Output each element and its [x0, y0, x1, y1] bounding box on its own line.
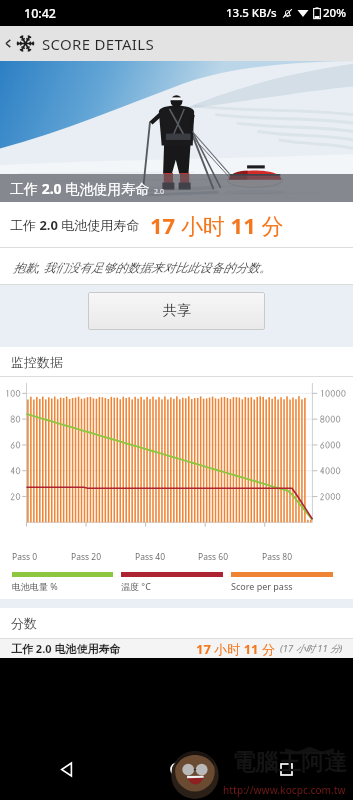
staticText: Pass 80 — [262, 551, 292, 563]
staticText: 分数 — [11, 615, 37, 631]
button[interactable]: 工作 2.0 电池使用寿命 — [0, 639, 353, 658]
staticText: 電腦王阿達 — [232, 748, 347, 777]
staticText: 监控数据 — [11, 354, 63, 370]
staticText: 工作 2.0 电池使用寿命 — [11, 641, 121, 656]
staticText: 13.5 KB/s — [226, 5, 277, 21]
staticText: SCORE DETAILS — [42, 34, 154, 54]
staticText: 温度 °C — [121, 580, 151, 592]
button[interactable]: Back — [52, 754, 82, 784]
staticText: Pass 40 — [135, 551, 165, 563]
button[interactable]: Recents — [271, 754, 301, 784]
staticText: 2.0 — [154, 187, 164, 197]
staticText: Score per pass — [231, 580, 293, 592]
staticText: 工作 2.0 电池使用寿命 — [10, 179, 150, 198]
staticText: 20% — [323, 5, 346, 21]
button[interactable]: Back — [0, 26, 16, 61]
staticText: (17 小时 11 分) — [280, 642, 343, 655]
staticText: 工作 2.0 电池使用寿命 — [10, 216, 140, 234]
staticText: 17 小时 11 分 — [196, 640, 275, 658]
staticText: Pass 20 — [71, 551, 101, 563]
staticText: Pass 0 — [12, 551, 38, 563]
button[interactable]: Home — [161, 753, 193, 785]
staticText: 10:42 — [24, 5, 57, 22]
staticText: http://www.kocpc.com.tw — [223, 783, 346, 797]
staticText: 共享 — [163, 302, 191, 320]
button[interactable]: 共享 — [88, 292, 265, 330]
staticText: Pass 60 — [198, 551, 228, 563]
staticText: 电池电量 % — [12, 580, 58, 592]
staticText: 抱歉, 我们没有足够的数据来对比此设备的分数。 — [13, 259, 272, 275]
staticText: 17 小时 11 分 — [150, 210, 284, 240]
